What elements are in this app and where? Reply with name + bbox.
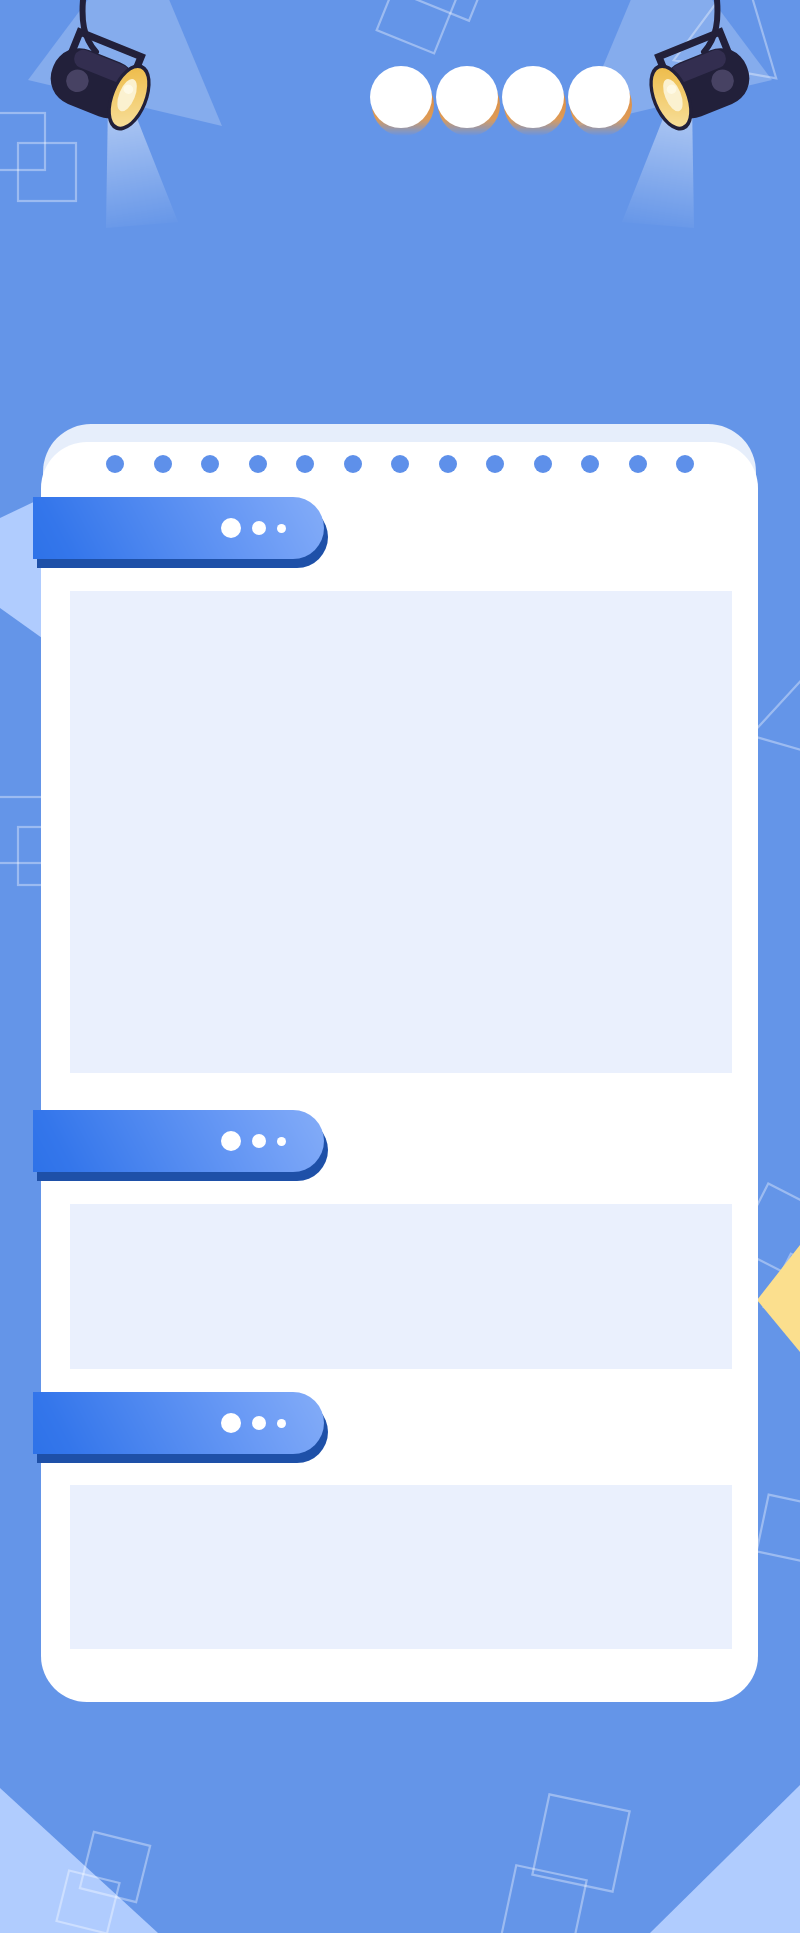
button[interactable]: Section: [33, 497, 324, 559]
button[interactable]: Section: [33, 1392, 324, 1454]
button[interactable]: Section: [33, 1110, 324, 1172]
